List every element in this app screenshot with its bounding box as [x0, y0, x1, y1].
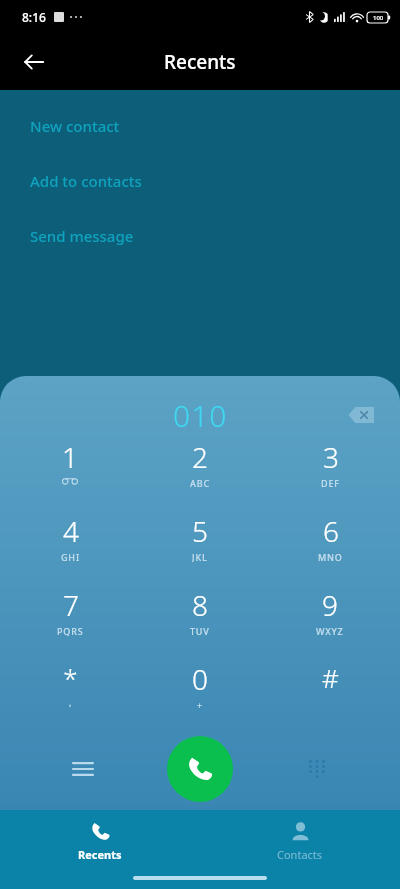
staticText: ABC [190, 477, 210, 488]
button[interactable]: 6 [284, 512, 376, 562]
button[interactable]: 5 [154, 512, 246, 562]
staticText: 9 [322, 586, 338, 624]
staticText: Send message [30, 226, 134, 246]
button[interactable]: 9 [284, 586, 376, 636]
button[interactable]: 1 [24, 438, 116, 488]
button[interactable]: 7 [24, 586, 116, 636]
button[interactable]: 0 [154, 660, 246, 710]
staticText: , [69, 696, 73, 708]
staticText: 8 [192, 586, 208, 624]
staticText: PQRS [57, 625, 84, 636]
staticText: 7 [63, 586, 79, 624]
staticText: 4 [63, 512, 79, 550]
staticText: Recents [164, 49, 236, 75]
staticText: Recents [78, 847, 122, 862]
staticText: GHI [61, 551, 80, 562]
button[interactable]: Call [167, 736, 233, 802]
button[interactable]: 4 [24, 512, 116, 562]
staticText: WXYZ [316, 625, 344, 636]
staticText: 100 [373, 14, 384, 22]
staticText: Contacts [277, 847, 323, 862]
staticText: 6 [323, 512, 339, 550]
button[interactable]: Back [12, 40, 56, 84]
staticText: # [322, 660, 339, 695]
staticText: 8:16 [22, 9, 46, 25]
button[interactable]: 2 [154, 438, 246, 488]
button[interactable]: * [24, 660, 116, 710]
staticText: 5 [192, 512, 208, 550]
button[interactable]: New contact [30, 114, 120, 138]
staticText: MNO [318, 551, 343, 562]
button[interactable]: Options [60, 746, 106, 792]
staticText: 3 [323, 438, 339, 476]
staticText: Add to contacts [30, 171, 142, 191]
staticText: 1 [62, 438, 78, 476]
button[interactable]: Recents [72, 815, 128, 868]
button[interactable]: Send message [30, 224, 134, 248]
button[interactable]: 8 [154, 586, 246, 636]
staticText: 2 [192, 438, 208, 476]
button[interactable]: # [284, 660, 376, 710]
staticText: TUV [190, 625, 210, 636]
button[interactable]: Contacts [271, 815, 329, 868]
staticText: DEF [321, 477, 340, 488]
staticText: 010 [173, 395, 228, 436]
staticText: * [63, 660, 78, 695]
button[interactable]: Add to contacts [30, 169, 142, 193]
button[interactable]: Backspace [344, 398, 378, 432]
staticText: JKL [192, 551, 208, 562]
staticText: + [197, 699, 203, 710]
staticText: 0 [192, 660, 208, 698]
staticText: New contact [30, 116, 120, 136]
button[interactable]: 3 [284, 438, 376, 488]
